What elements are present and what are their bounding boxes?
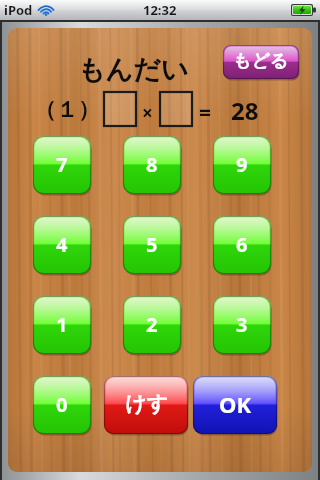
button[interactable]: けす bbox=[104, 376, 188, 434]
button[interactable]: 3 bbox=[213, 296, 271, 354]
staticText: 2 bbox=[146, 311, 158, 338]
staticText: 8 bbox=[146, 151, 158, 178]
button[interactable] bbox=[160, 92, 192, 126]
button[interactable]: 4 bbox=[33, 216, 91, 274]
staticText: × bbox=[142, 100, 153, 126]
staticText: （１） bbox=[34, 96, 100, 124]
staticText: 5 bbox=[146, 231, 158, 258]
button[interactable]: 9 bbox=[213, 136, 271, 194]
staticText: けす bbox=[125, 391, 168, 417]
button[interactable]: 0 bbox=[33, 376, 91, 434]
staticText: OK bbox=[219, 389, 252, 419]
staticText: 3 bbox=[236, 311, 248, 338]
button[interactable]: OK bbox=[193, 376, 277, 434]
staticText: もどる bbox=[233, 50, 289, 73]
staticText: 4 bbox=[56, 231, 68, 258]
staticText: 9 bbox=[236, 151, 248, 178]
staticText: 6 bbox=[236, 231, 248, 258]
staticText: 1 bbox=[56, 311, 68, 338]
staticText: もんだい bbox=[68, 53, 198, 87]
button[interactable]: 5 bbox=[123, 216, 181, 274]
button[interactable]: 1 bbox=[33, 296, 91, 354]
button[interactable] bbox=[104, 92, 136, 126]
staticText: 28 bbox=[231, 94, 259, 127]
button[interactable]: もどる bbox=[223, 45, 299, 79]
staticText: = bbox=[199, 98, 212, 127]
button[interactable]: 2 bbox=[123, 296, 181, 354]
staticText: 7 bbox=[56, 151, 68, 178]
staticText: 12:32 bbox=[143, 1, 177, 19]
button[interactable]: 6 bbox=[213, 216, 271, 274]
button[interactable]: 8 bbox=[123, 136, 181, 194]
staticText: iPod bbox=[4, 1, 33, 19]
staticText: 0 bbox=[56, 391, 68, 418]
button[interactable]: 7 bbox=[33, 136, 91, 194]
